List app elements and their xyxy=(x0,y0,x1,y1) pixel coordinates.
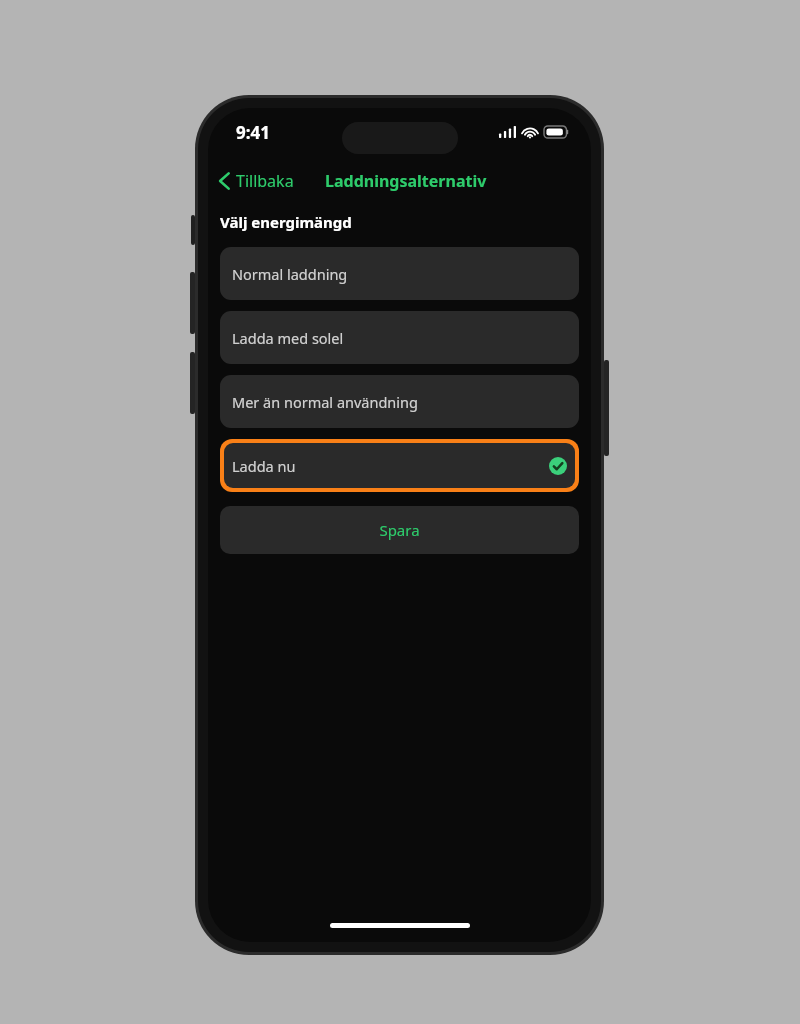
staticText: Laddningsalternativ xyxy=(325,170,487,192)
staticText: Ladda med solel xyxy=(232,328,344,348)
staticText: Ladda nu xyxy=(232,456,296,476)
button[interactable]: Ladda nu xyxy=(224,443,575,488)
button[interactable]: Mer än normal användning xyxy=(220,375,579,428)
staticText: Mer än normal användning xyxy=(232,392,418,412)
button[interactable]: Normal laddning xyxy=(220,247,579,300)
staticText: Spara xyxy=(379,520,420,540)
staticText: 9:41 xyxy=(236,121,270,144)
staticText: Tillbaka xyxy=(236,170,294,192)
button[interactable]: Tillbaka xyxy=(214,167,298,195)
staticText: Normal laddning xyxy=(232,264,348,284)
staticText: Välj energimängd xyxy=(220,212,352,232)
button[interactable]: Spara xyxy=(220,506,579,554)
button[interactable]: Ladda med solel xyxy=(220,311,579,364)
